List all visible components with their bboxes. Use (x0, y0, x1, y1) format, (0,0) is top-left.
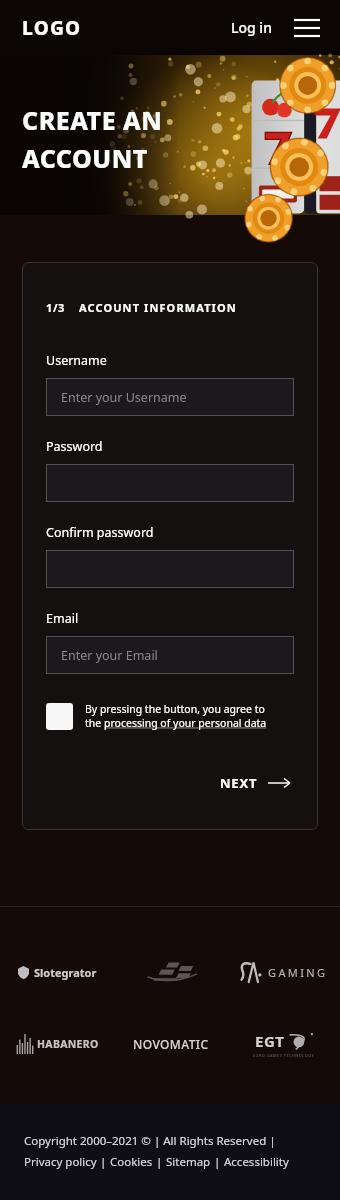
staticText: | (211, 1154, 224, 1170)
button[interactable]: Log in (227, 12, 276, 43)
staticText: NEXT (220, 774, 258, 792)
staticText: NOVOMATIC (133, 1036, 209, 1052)
button[interactable]: Menu (292, 16, 322, 40)
button[interactable]: LOGO (22, 15, 82, 41)
button[interactable]: Slotegrator (0, 949, 114, 995)
staticText: Email (46, 610, 79, 627)
button[interactable]: Enter your Username (46, 378, 294, 416)
staticText: EGT (255, 1031, 285, 1051)
staticText: Confirm password (46, 524, 154, 541)
button[interactable]: NEXT (216, 768, 294, 798)
other: Habanero (16, 1034, 99, 1054)
staticText: the (85, 716, 104, 730)
button[interactable]: Playtech (114, 949, 227, 995)
button[interactable]: Accessibility (224, 1154, 289, 1170)
staticText: | (97, 1154, 110, 1170)
other: Agree to terms (46, 703, 73, 730)
staticText: EURO GAMES TECHNOLOGY (253, 1053, 315, 1058)
button[interactable] (46, 464, 294, 502)
staticText: GAMING (268, 965, 328, 980)
button[interactable]: EGT (227, 1021, 340, 1067)
other: Playtech (140, 957, 202, 987)
staticText: Copyright 2000–2021 © | All Rights Reser… (24, 1133, 276, 1149)
staticText: By pressing the button, you agree to (85, 702, 265, 716)
other: EGT (253, 1031, 315, 1058)
button[interactable]: Cookies (110, 1154, 153, 1170)
staticText: 1/3 (46, 300, 65, 315)
button[interactable]: Agree to terms (46, 702, 294, 730)
button[interactable]: Enter your Email (46, 636, 294, 674)
button[interactable] (46, 550, 294, 588)
staticText: Password (46, 438, 103, 455)
button[interactable]: Sitemap (166, 1154, 211, 1170)
other: SA Gaming (239, 960, 328, 984)
button[interactable]: SA Gaming (227, 949, 340, 995)
staticText: Enter your Email (61, 647, 158, 664)
button[interactable]: Habanero (0, 1021, 114, 1067)
staticText: Enter your Username (61, 389, 187, 406)
staticText: ACCOUNT INFORMATION (79, 300, 237, 315)
other: Slotegrator (18, 965, 97, 980)
button[interactable]: processing of your personal data (104, 716, 267, 730)
staticText: Username (46, 352, 107, 369)
staticText: Slotegrator (34, 965, 97, 980)
button[interactable]: Privacy policy (24, 1154, 97, 1170)
staticText: CREATE AN (22, 103, 163, 137)
staticText: | (153, 1154, 166, 1170)
staticText: ACCOUNT (22, 141, 148, 175)
staticText: Log in (231, 18, 272, 37)
staticText: HABANERO (37, 1037, 99, 1051)
button[interactable]: Novomatic (114, 1021, 227, 1067)
